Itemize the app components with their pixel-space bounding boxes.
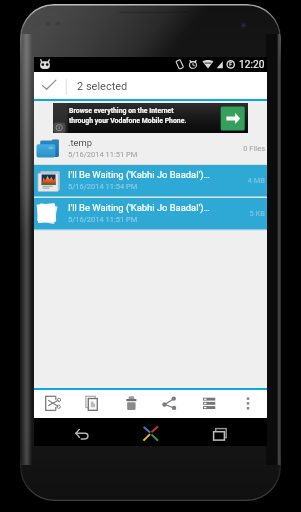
button[interactable]: Copy <box>73 390 112 418</box>
staticText: 5/16/2014 11:54 PM <box>68 182 138 191</box>
staticText: .temp <box>68 137 93 148</box>
staticText: through your Vodafone Mobile Phone. <box>69 117 187 125</box>
staticText: I'll Be Waiting ('Kabhi Jo Baadal')… <box>68 202 210 213</box>
button[interactable]: Done selecting <box>34 72 66 99</box>
staticText: 5/16/2014 11:51 PM <box>68 150 138 159</box>
button[interactable]: Home <box>131 418 171 446</box>
staticText: 2 selected <box>77 80 128 93</box>
staticText: 4 MB <box>184 176 265 185</box>
staticText: I'll Be Waiting ('Kabhi Jo Baadal')… <box>68 169 210 180</box>
button[interactable]: Back <box>62 418 102 446</box>
button[interactable]: Recent apps <box>200 418 240 446</box>
staticText: 0 Files <box>184 144 265 153</box>
staticText: 5/16/2014 11:51 PM <box>68 215 138 224</box>
staticText: 5 KB <box>184 209 265 218</box>
staticText: 12:20 <box>239 59 265 71</box>
button[interactable]: Browse everything on the Internet <box>53 103 248 133</box>
button[interactable]: Details <box>189 390 228 418</box>
button[interactable]: Delete <box>112 390 151 418</box>
button[interactable]: I'll Be Waiting ('Kabhi Jo Baadal')… <box>34 165 267 197</box>
button[interactable]: Share <box>150 390 189 418</box>
button[interactable]: .temp <box>34 133 267 165</box>
staticText: Browse everything on the Internet <box>69 107 174 115</box>
button[interactable]: I'll Be Waiting ('Kabhi Jo Baadal')… <box>34 198 267 230</box>
button[interactable]: Cut <box>34 390 73 418</box>
button[interactable]: More options <box>228 390 267 418</box>
